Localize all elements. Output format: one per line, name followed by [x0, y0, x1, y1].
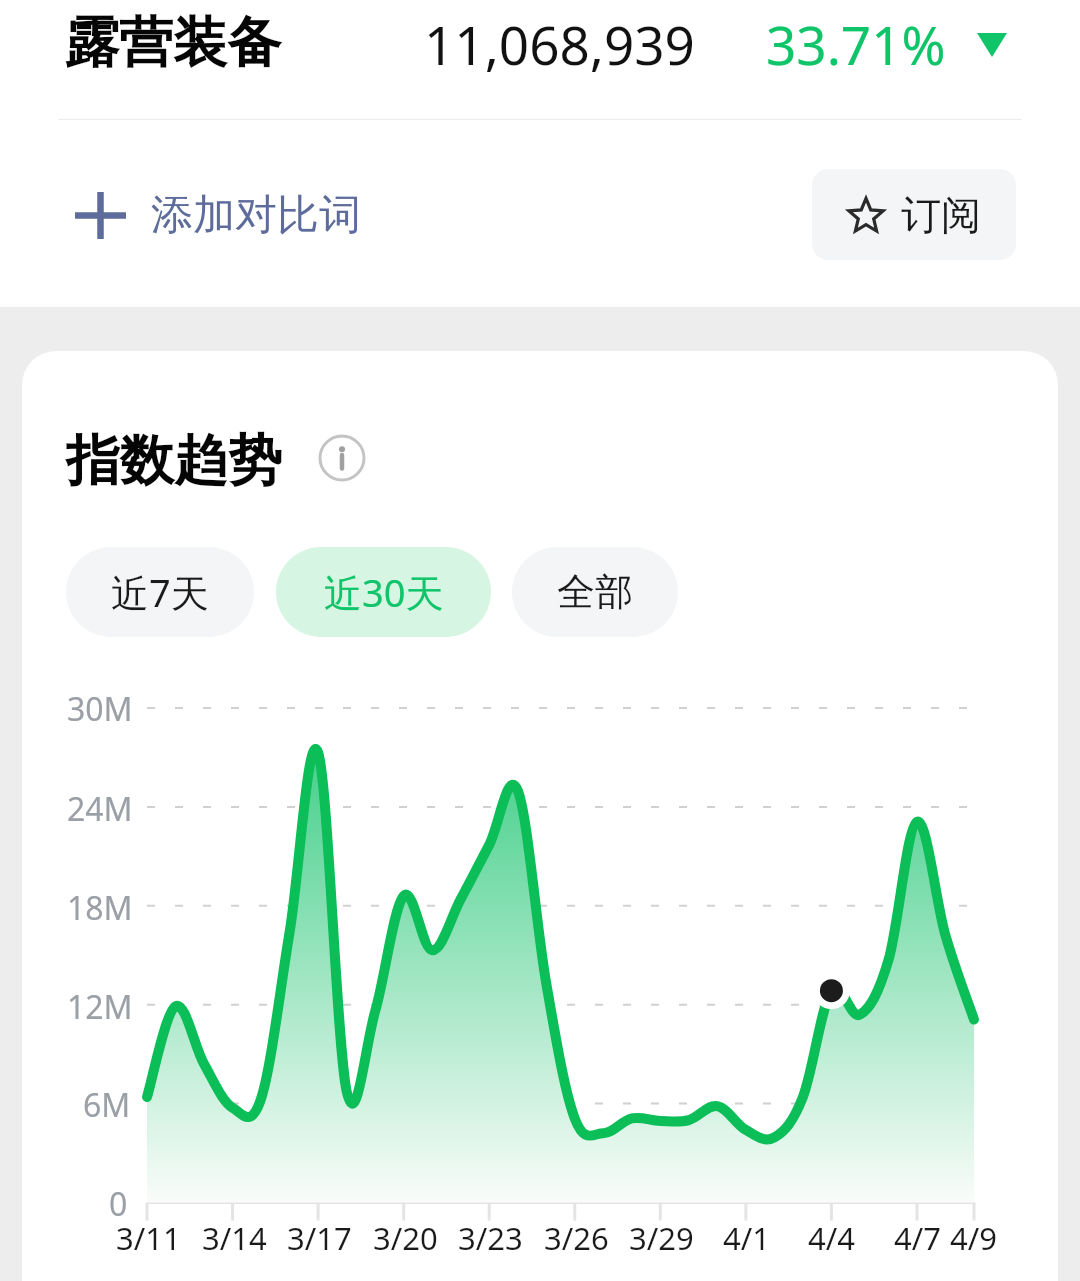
- button[interactable]: 订阅: [812, 169, 1016, 260]
- staticText: 全部: [557, 568, 633, 616]
- button[interactable]: 近30天: [276, 547, 491, 637]
- staticText: 4/4: [808, 1217, 855, 1259]
- staticText: 3/29: [629, 1217, 694, 1259]
- staticText: 4/7: [894, 1217, 941, 1259]
- staticText: 3/26: [544, 1217, 609, 1259]
- staticText: 3/20: [373, 1217, 438, 1259]
- staticText: 33.71%: [766, 8, 946, 80]
- staticText: 订阅: [901, 190, 981, 240]
- staticText: 添加对比词: [151, 189, 361, 242]
- staticText: 18M: [67, 886, 133, 930]
- button[interactable]: Info: [318, 434, 366, 482]
- staticText: 11,068,939: [424, 8, 695, 80]
- staticText: 0: [109, 1182, 128, 1226]
- staticText: 6M: [83, 1083, 131, 1127]
- staticText: 3/14: [202, 1217, 267, 1259]
- button[interactable]: 近7天: [66, 547, 254, 637]
- staticText: 3/17: [287, 1217, 352, 1259]
- staticText: 3/11: [116, 1217, 181, 1259]
- button[interactable]: 全部: [512, 547, 678, 637]
- staticText: 4/1: [723, 1217, 770, 1259]
- staticText: 指数趋势: [66, 427, 282, 495]
- staticText: 24M: [67, 787, 133, 831]
- staticText: 近30天: [324, 566, 444, 618]
- staticText: 露营装备: [65, 9, 281, 77]
- staticText: 4/9: [950, 1217, 997, 1259]
- staticText: 12M: [67, 985, 133, 1029]
- staticText: 3/23: [458, 1217, 523, 1259]
- staticText: 近7天: [111, 566, 209, 618]
- staticText: 30M: [67, 687, 133, 731]
- button[interactable]: 添加对比词: [59, 175, 377, 256]
